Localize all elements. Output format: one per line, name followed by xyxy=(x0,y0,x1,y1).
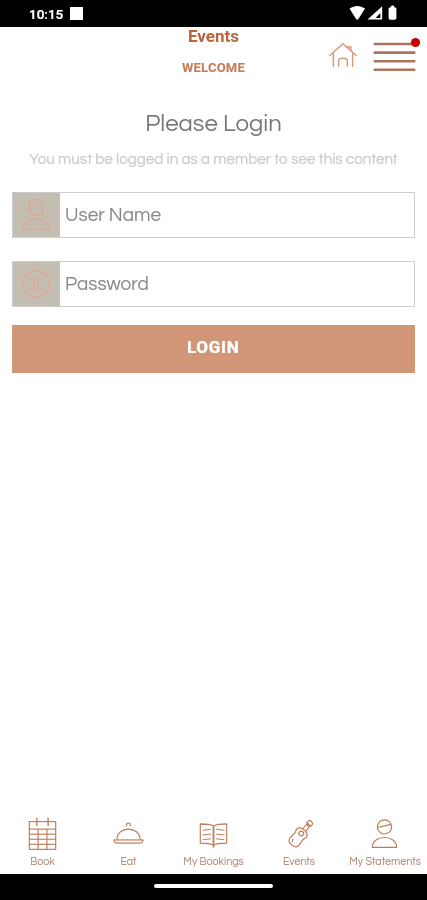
staticText: User Name xyxy=(65,205,162,225)
staticText: WELCOME xyxy=(182,60,245,75)
staticText: You must be logged in as a member to see… xyxy=(0,152,427,168)
button[interactable]: My Bookings xyxy=(171,800,256,874)
staticText: My Statements xyxy=(349,856,421,867)
button[interactable]: Home xyxy=(325,37,361,73)
staticText: Please Login xyxy=(0,111,427,136)
button[interactable]: Book xyxy=(0,800,85,874)
staticText: Events xyxy=(283,856,315,867)
staticText: 10:15 xyxy=(29,6,64,22)
staticText: LOGIN xyxy=(187,337,240,357)
button[interactable]: Eat xyxy=(86,800,171,874)
staticText: Password xyxy=(65,274,149,294)
button[interactable]: My Statements xyxy=(342,800,427,874)
staticText: Book xyxy=(30,856,55,867)
button[interactable]: Password xyxy=(12,261,415,307)
button[interactable]: User Name xyxy=(12,192,415,238)
staticText: My Bookings xyxy=(183,856,244,867)
staticText: Eat xyxy=(120,856,137,867)
staticText: Events xyxy=(188,26,240,46)
button[interactable]: LOGIN xyxy=(12,325,415,373)
button[interactable]: Events xyxy=(256,800,341,874)
button[interactable]: Menu xyxy=(371,36,421,76)
